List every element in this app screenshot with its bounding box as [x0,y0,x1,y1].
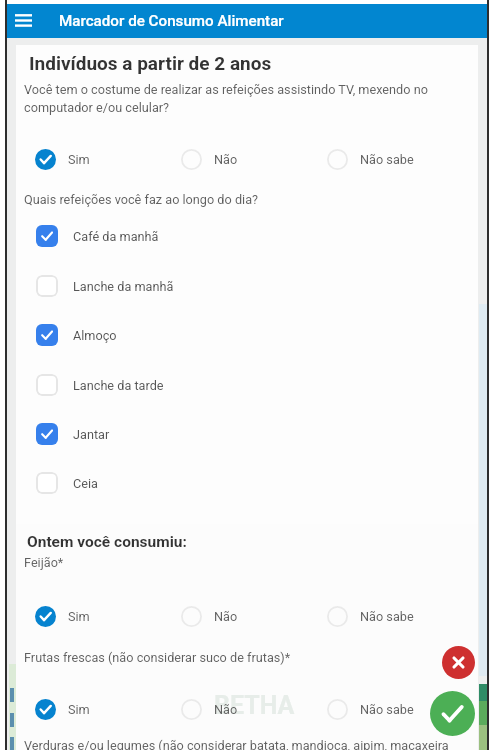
button[interactable]: Café da manhã [36,217,466,255]
button[interactable]: Cancelar [442,646,475,679]
button[interactable]: Lanche da tarde [36,366,466,404]
staticText: Quais refeições você faz ao longo do dia… [24,192,259,207]
staticText: Não [214,152,238,167]
button[interactable]: Menu [9,6,38,35]
button[interactable]: Jantar [36,415,466,453]
staticText: Sim [68,702,90,717]
staticText: Ontem você consumiu: [27,533,187,551]
button[interactable]: Não sabe [327,696,414,722]
staticText: Sim [68,609,90,624]
staticText: Não sabe [360,609,414,624]
staticText: Almoço [73,328,117,343]
button[interactable]: Sim [35,603,90,629]
button[interactable]: Almoço [36,316,466,354]
staticText: Não [214,609,238,624]
staticText: Indivíduos a partir de 2 anos [29,52,272,74]
button[interactable]: Confirmar [430,691,475,736]
button[interactable]: Não [181,696,238,722]
button[interactable]: Não [181,146,238,172]
staticText: Você tem o costume de realizar as refeiç… [24,82,436,115]
button[interactable]: Não sabe [327,603,414,629]
staticText: Não sabe [360,702,414,717]
staticText: Sim [68,152,90,167]
staticText: Ceia [73,476,98,491]
staticText: Lanche da tarde [73,378,164,393]
staticText: Frutas frescas (não considerar suco de f… [24,650,291,665]
staticText: Não [214,702,238,717]
staticText: Marcador de Consumo Alimentar [59,12,284,30]
button[interactable]: Sim [35,146,90,172]
button[interactable]: Ceia [36,464,466,502]
staticText: Verduras e/ou legumes (não considerar ba… [24,738,449,750]
staticText: Não sabe [360,152,414,167]
button[interactable]: Sim [35,696,90,722]
staticText: Lanche da manhã [73,279,174,294]
staticText: BETHA [214,691,295,720]
button[interactable]: Não sabe [327,146,414,172]
staticText: Café da manhã [73,229,159,244]
button[interactable]: Lanche da manhã [36,267,466,305]
staticText: Jantar [73,427,110,442]
button[interactable]: Não [181,603,238,629]
staticText: Feijão* [24,555,64,570]
